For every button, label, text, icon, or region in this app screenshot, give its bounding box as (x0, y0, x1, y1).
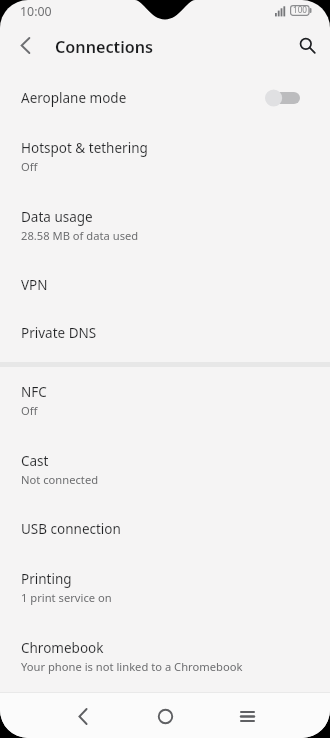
staticText: 10:00 (20, 3, 52, 20)
button[interactable]: Back (60, 694, 105, 738)
staticText: Off (21, 403, 38, 418)
staticText: 28.58 MB of data used (21, 228, 139, 243)
button[interactable]: Recent apps (225, 694, 270, 738)
staticText: Cast (21, 452, 49, 470)
staticText: NFC (21, 383, 47, 401)
staticText: Data usage (21, 208, 93, 226)
button[interactable]: Navigate up (4, 26, 46, 64)
staticText: Hotspot & tethering (21, 139, 148, 157)
button[interactable]: Hotspot & tethering (0, 122, 330, 191)
button[interactable]: Private DNS (0, 309, 330, 357)
staticText: Your phone is not linked to a Chromebook (21, 659, 243, 674)
staticText: Off (21, 159, 38, 174)
button[interactable]: Data usage (0, 191, 330, 260)
button[interactable]: Search (285, 26, 329, 64)
staticText: Printing (21, 570, 72, 588)
staticText: Chromebook (21, 639, 104, 657)
button[interactable]: NFC (0, 366, 330, 435)
staticText: VPN (21, 276, 48, 294)
staticText: 100 (293, 4, 308, 15)
button[interactable]: USB connection (0, 505, 330, 553)
button[interactable]: Chromebook (0, 622, 330, 691)
staticText: USB connection (21, 520, 121, 538)
button[interactable]: Home (143, 694, 188, 738)
staticText: 1 print service on (21, 590, 112, 605)
button[interactable]: VPN (0, 261, 330, 309)
staticText: Private DNS (21, 324, 97, 342)
staticText: Aeroplane mode (21, 89, 127, 107)
staticText: Not connected (21, 472, 99, 487)
button[interactable]: Cast (0, 435, 330, 504)
staticText: Connections (55, 36, 154, 58)
button[interactable]: Printing (0, 553, 330, 622)
button[interactable]: Aeroplane mode (0, 74, 330, 122)
